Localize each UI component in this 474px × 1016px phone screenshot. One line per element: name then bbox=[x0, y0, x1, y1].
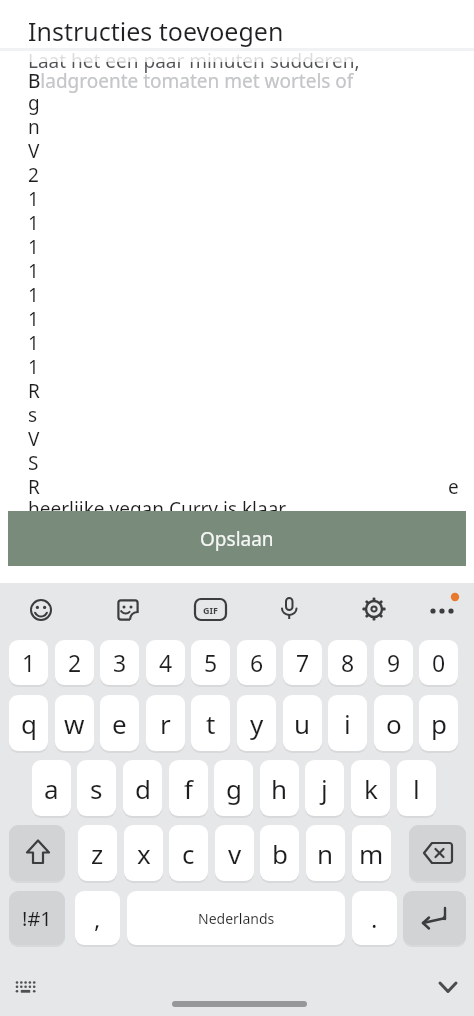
staticText: 1 bbox=[22, 647, 36, 678]
staticText: w bbox=[64, 706, 85, 741]
button[interactable]: 5 bbox=[191, 640, 230, 685]
button[interactable] bbox=[30, 599, 52, 621]
staticText: Nederlands bbox=[198, 909, 275, 928]
staticText: 5 bbox=[204, 647, 218, 678]
button[interactable]: 6 bbox=[237, 640, 276, 685]
staticText: R bbox=[28, 378, 40, 404]
staticText: z bbox=[91, 836, 104, 871]
staticText: 6 bbox=[250, 647, 264, 678]
staticText: V bbox=[28, 426, 40, 452]
staticText: !#1 bbox=[22, 905, 52, 932]
staticText: i bbox=[344, 706, 351, 741]
staticText: 7 bbox=[296, 647, 310, 678]
button[interactable]: i bbox=[328, 695, 367, 751]
staticText: 1 bbox=[28, 186, 39, 212]
button[interactable] bbox=[428, 591, 462, 617]
button[interactable] bbox=[14, 980, 38, 996]
button[interactable]: Opslaan bbox=[8, 511, 466, 566]
staticText: a bbox=[44, 771, 59, 806]
staticText: 9 bbox=[387, 647, 401, 678]
staticText: . bbox=[371, 902, 378, 935]
button[interactable]: 8 bbox=[328, 640, 367, 685]
staticText: 1 bbox=[28, 234, 39, 260]
button[interactable]: w bbox=[55, 695, 94, 751]
staticText: 0 bbox=[432, 647, 446, 678]
staticText: e bbox=[112, 706, 127, 741]
button[interactable]: 0 bbox=[419, 640, 458, 685]
button[interactable]: z bbox=[78, 825, 117, 881]
button[interactable]: c bbox=[169, 825, 208, 881]
button[interactable]: q bbox=[9, 695, 48, 751]
staticText: GIF bbox=[203, 604, 218, 616]
staticText: t bbox=[206, 706, 216, 741]
staticText: 2 bbox=[28, 162, 39, 188]
staticText: V bbox=[28, 138, 40, 164]
staticText: g bbox=[28, 90, 40, 116]
staticText: s bbox=[90, 771, 103, 806]
button[interactable]: y bbox=[237, 695, 276, 751]
staticText: b bbox=[272, 836, 288, 871]
staticText: , bbox=[94, 902, 101, 935]
button[interactable]: a bbox=[32, 760, 71, 816]
button[interactable]: h bbox=[260, 760, 299, 816]
button[interactable] bbox=[278, 597, 300, 621]
button[interactable]: !#1 bbox=[9, 891, 65, 945]
button[interactable]: g bbox=[214, 760, 253, 816]
staticText: 1 bbox=[28, 210, 39, 236]
button[interactable]: t bbox=[191, 695, 230, 751]
staticText: 1 bbox=[28, 354, 39, 380]
staticText: x bbox=[137, 836, 151, 871]
button[interactable] bbox=[9, 825, 65, 881]
staticText: 1 bbox=[28, 330, 39, 356]
staticText: s bbox=[28, 402, 38, 428]
staticText: 1 bbox=[28, 258, 39, 284]
staticText: Opslaan bbox=[200, 526, 274, 552]
button[interactable]: . bbox=[352, 891, 397, 945]
button[interactable]: o bbox=[374, 695, 413, 751]
button[interactable]: p bbox=[419, 695, 458, 751]
staticText: Instructies toevoegen bbox=[28, 14, 284, 48]
staticText: l bbox=[413, 771, 420, 806]
button[interactable]: s bbox=[77, 760, 116, 816]
button[interactable]: j bbox=[305, 760, 344, 816]
staticText: 1 bbox=[28, 306, 39, 332]
button[interactable]: l bbox=[397, 760, 436, 816]
button[interactable]: Nederlands bbox=[127, 891, 345, 945]
staticText: v bbox=[228, 836, 242, 871]
button[interactable]: r bbox=[146, 695, 185, 751]
button[interactable]: 3 bbox=[100, 640, 139, 685]
button[interactable] bbox=[403, 891, 466, 945]
button[interactable]: 9 bbox=[374, 640, 413, 685]
staticText: h bbox=[271, 771, 288, 806]
staticText: g bbox=[226, 771, 242, 806]
button[interactable]: , bbox=[75, 891, 120, 945]
button[interactable]: 7 bbox=[283, 640, 322, 685]
staticText: q bbox=[21, 706, 37, 741]
staticText: r bbox=[160, 706, 171, 741]
button[interactable]: b bbox=[260, 825, 299, 881]
button[interactable]: d bbox=[123, 760, 162, 816]
button[interactable]: m bbox=[352, 825, 391, 881]
staticText: 1 bbox=[28, 282, 39, 308]
staticText: 4 bbox=[159, 647, 173, 678]
button[interactable]: e bbox=[100, 695, 139, 751]
staticText: n bbox=[28, 114, 40, 140]
staticText: heerlijke vegan Curry is klaar bbox=[28, 496, 287, 522]
staticText: c bbox=[182, 836, 195, 871]
staticText: S bbox=[28, 450, 39, 476]
button[interactable]: 1 bbox=[9, 640, 48, 685]
button[interactable] bbox=[362, 597, 386, 621]
button[interactable]: v bbox=[215, 825, 254, 881]
button[interactable] bbox=[117, 599, 139, 621]
button[interactable]: x bbox=[124, 825, 163, 881]
button[interactable]: u bbox=[283, 695, 322, 751]
button[interactable]: f bbox=[169, 760, 208, 816]
button[interactable] bbox=[438, 981, 458, 995]
button[interactable]: 2 bbox=[55, 640, 94, 685]
button[interactable] bbox=[409, 825, 466, 881]
button[interactable]: GIF bbox=[194, 598, 227, 621]
button[interactable]: 4 bbox=[146, 640, 185, 685]
button[interactable]: n bbox=[306, 825, 345, 881]
staticText: Laat het een paar minuten sudderen, bbox=[28, 48, 360, 74]
button[interactable]: k bbox=[351, 760, 390, 816]
